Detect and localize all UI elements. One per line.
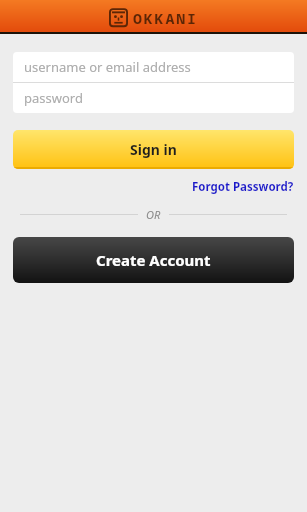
button[interactable]: password: [13, 83, 294, 113]
staticText: username or email address: [24, 58, 191, 76]
staticText: OR: [146, 207, 161, 222]
staticText: password: [24, 89, 83, 107]
staticText: Forgot Password?: [192, 179, 294, 195]
button[interactable]: Forgot Password?: [184, 177, 307, 197]
staticText: Create Account: [96, 250, 211, 270]
other: Okkani logo: [109, 7, 128, 28]
button[interactable]: username or email address: [13, 52, 294, 82]
button[interactable]: Sign in: [13, 130, 294, 169]
button[interactable]: Create Account: [13, 237, 294, 283]
staticText: OKKANI: [133, 8, 198, 28]
staticText: Sign in: [130, 140, 177, 159]
